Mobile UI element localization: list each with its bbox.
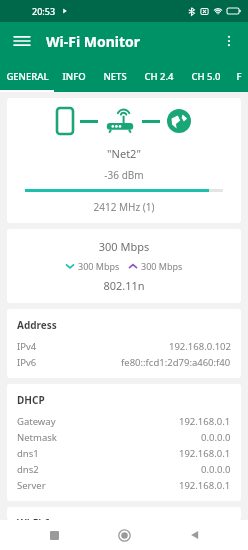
staticText: 192.168.0.102 [169, 340, 231, 353]
button[interactable]: More options [214, 26, 244, 56]
button[interactable]: 300 Mbps [7, 229, 241, 303]
staticText: Netmask [17, 431, 57, 444]
staticText: 300 Mbps [7, 239, 241, 254]
button[interactable]: Address [7, 309, 241, 378]
staticText: "Net2" [7, 146, 241, 161]
staticText: 0.0.0.0 [201, 431, 231, 444]
staticText: Address [17, 318, 57, 332]
button[interactable]: CH 5.0 [182, 60, 230, 92]
staticText: IPv6 [17, 356, 37, 369]
button[interactable]: NETS [94, 60, 136, 92]
staticText: 802.11n [7, 278, 241, 293]
button[interactable]: Wi-Fi 6 [7, 507, 241, 520]
staticText: -36 dBm [7, 168, 241, 182]
button[interactable]: Recent apps [37, 520, 71, 550]
button[interactable]: Home [107, 520, 141, 550]
button[interactable]: DHCP [7, 384, 241, 501]
staticText: 20:53 [32, 5, 56, 17]
staticText: Wi-Fi 6 [17, 516, 50, 520]
button[interactable]: INFO [54, 60, 94, 92]
staticText: 300 Mbps [141, 260, 183, 272]
button[interactable]: "Net2" [7, 98, 241, 223]
staticText: 300 Mbps [78, 260, 120, 272]
button[interactable]: CH 2.4 [136, 60, 182, 92]
staticText: 192.168.0.1 [179, 479, 231, 492]
staticText: 0.0.0.0 [201, 463, 231, 476]
staticText: Wi-Fi Monitor [46, 32, 141, 51]
button[interactable]: Open navigation menu [6, 25, 38, 57]
staticText: Gateway [17, 415, 56, 428]
staticText: 2412 MHz (1) [7, 200, 241, 214]
staticText: GENERAL [6, 70, 49, 83]
staticText: NETS [103, 70, 127, 83]
staticText: CH 5.0 [191, 70, 221, 83]
button[interactable]: F [230, 60, 248, 92]
staticText: 192.168.0.1 [179, 415, 231, 428]
staticText: F [236, 70, 242, 83]
staticText: fe80::fcd1:2d79:a460:f40 [121, 356, 231, 369]
staticText: DHCP [17, 393, 45, 407]
staticText: CH 2.4 [144, 70, 174, 83]
button[interactable]: GENERAL [0, 60, 54, 92]
button[interactable]: Back [178, 520, 212, 550]
staticText: dns2 [17, 463, 39, 476]
staticText: IPv4 [17, 340, 37, 353]
staticText: INFO [62, 70, 86, 83]
staticText: 192.168.0.1 [179, 447, 231, 460]
staticText: dns1 [17, 447, 39, 460]
staticText: Server [17, 479, 46, 492]
